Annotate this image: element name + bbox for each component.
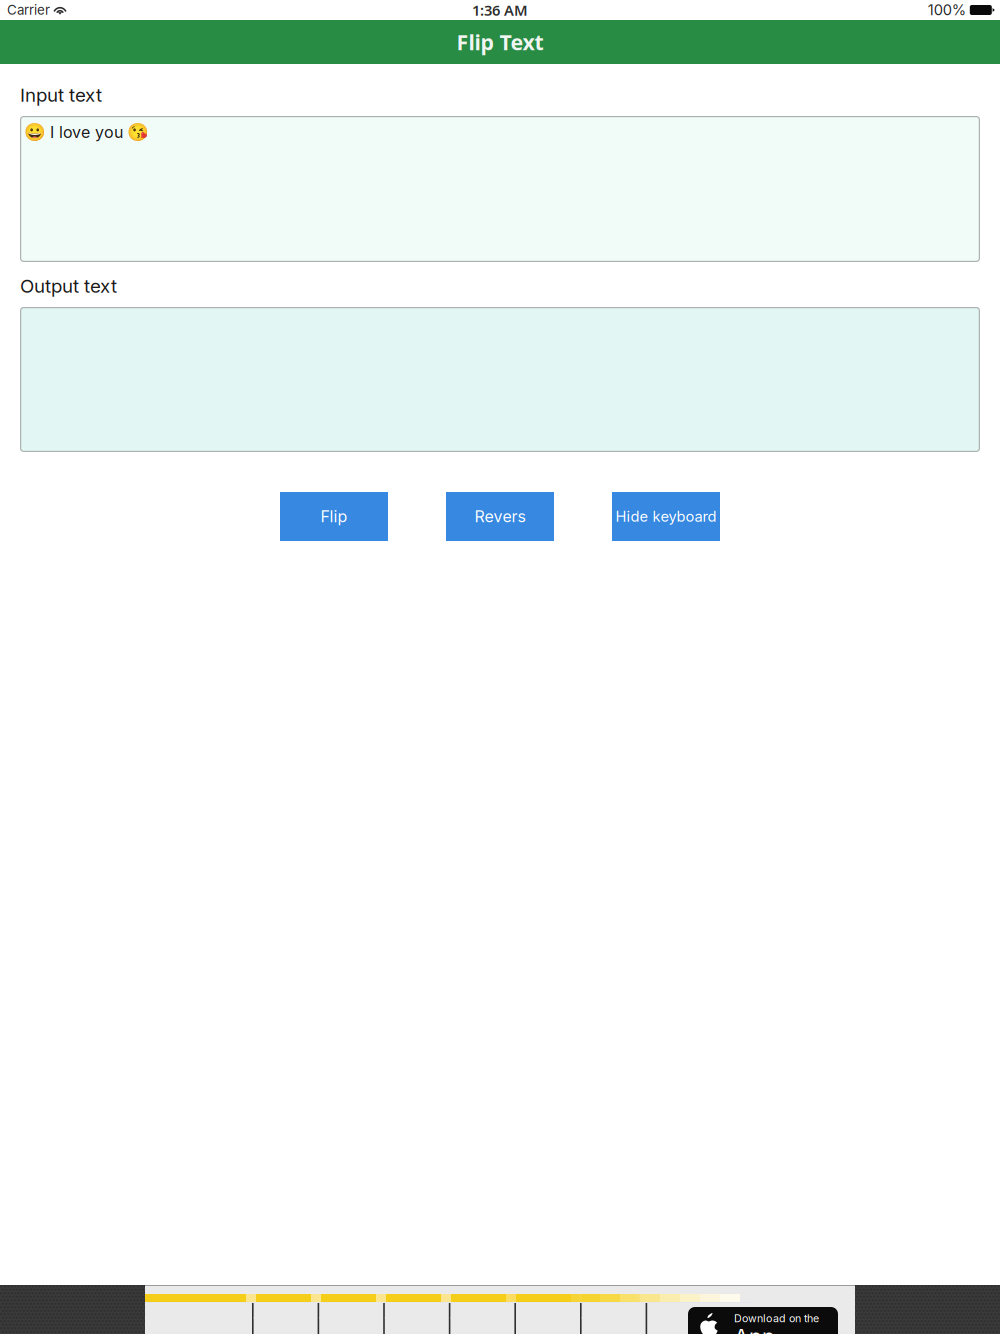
staticText: Output text [20, 275, 117, 297]
button[interactable]: Hide keyboard [612, 492, 720, 541]
staticText: Flip Text [456, 27, 543, 57]
staticText: 😘 [127, 122, 149, 142]
staticText: Hide keyboard [615, 508, 716, 525]
staticText: Flip [320, 507, 347, 526]
staticText: App Store [734, 1324, 788, 1334]
staticText: Download on the [734, 1312, 819, 1325]
button[interactable]: Flip [280, 492, 388, 541]
staticText: 😀 [24, 122, 46, 142]
staticText: Revers [474, 507, 525, 526]
staticText: I love you [50, 122, 123, 142]
staticText: Input text [20, 84, 102, 106]
staticText: 100% [928, 1, 966, 19]
staticText: 1:36 AM [472, 0, 528, 20]
button[interactable]: Download on the App Store advertisement [0, 1285, 1000, 1334]
staticText: Carrier [7, 2, 50, 18]
button[interactable]: Revers [446, 492, 554, 541]
